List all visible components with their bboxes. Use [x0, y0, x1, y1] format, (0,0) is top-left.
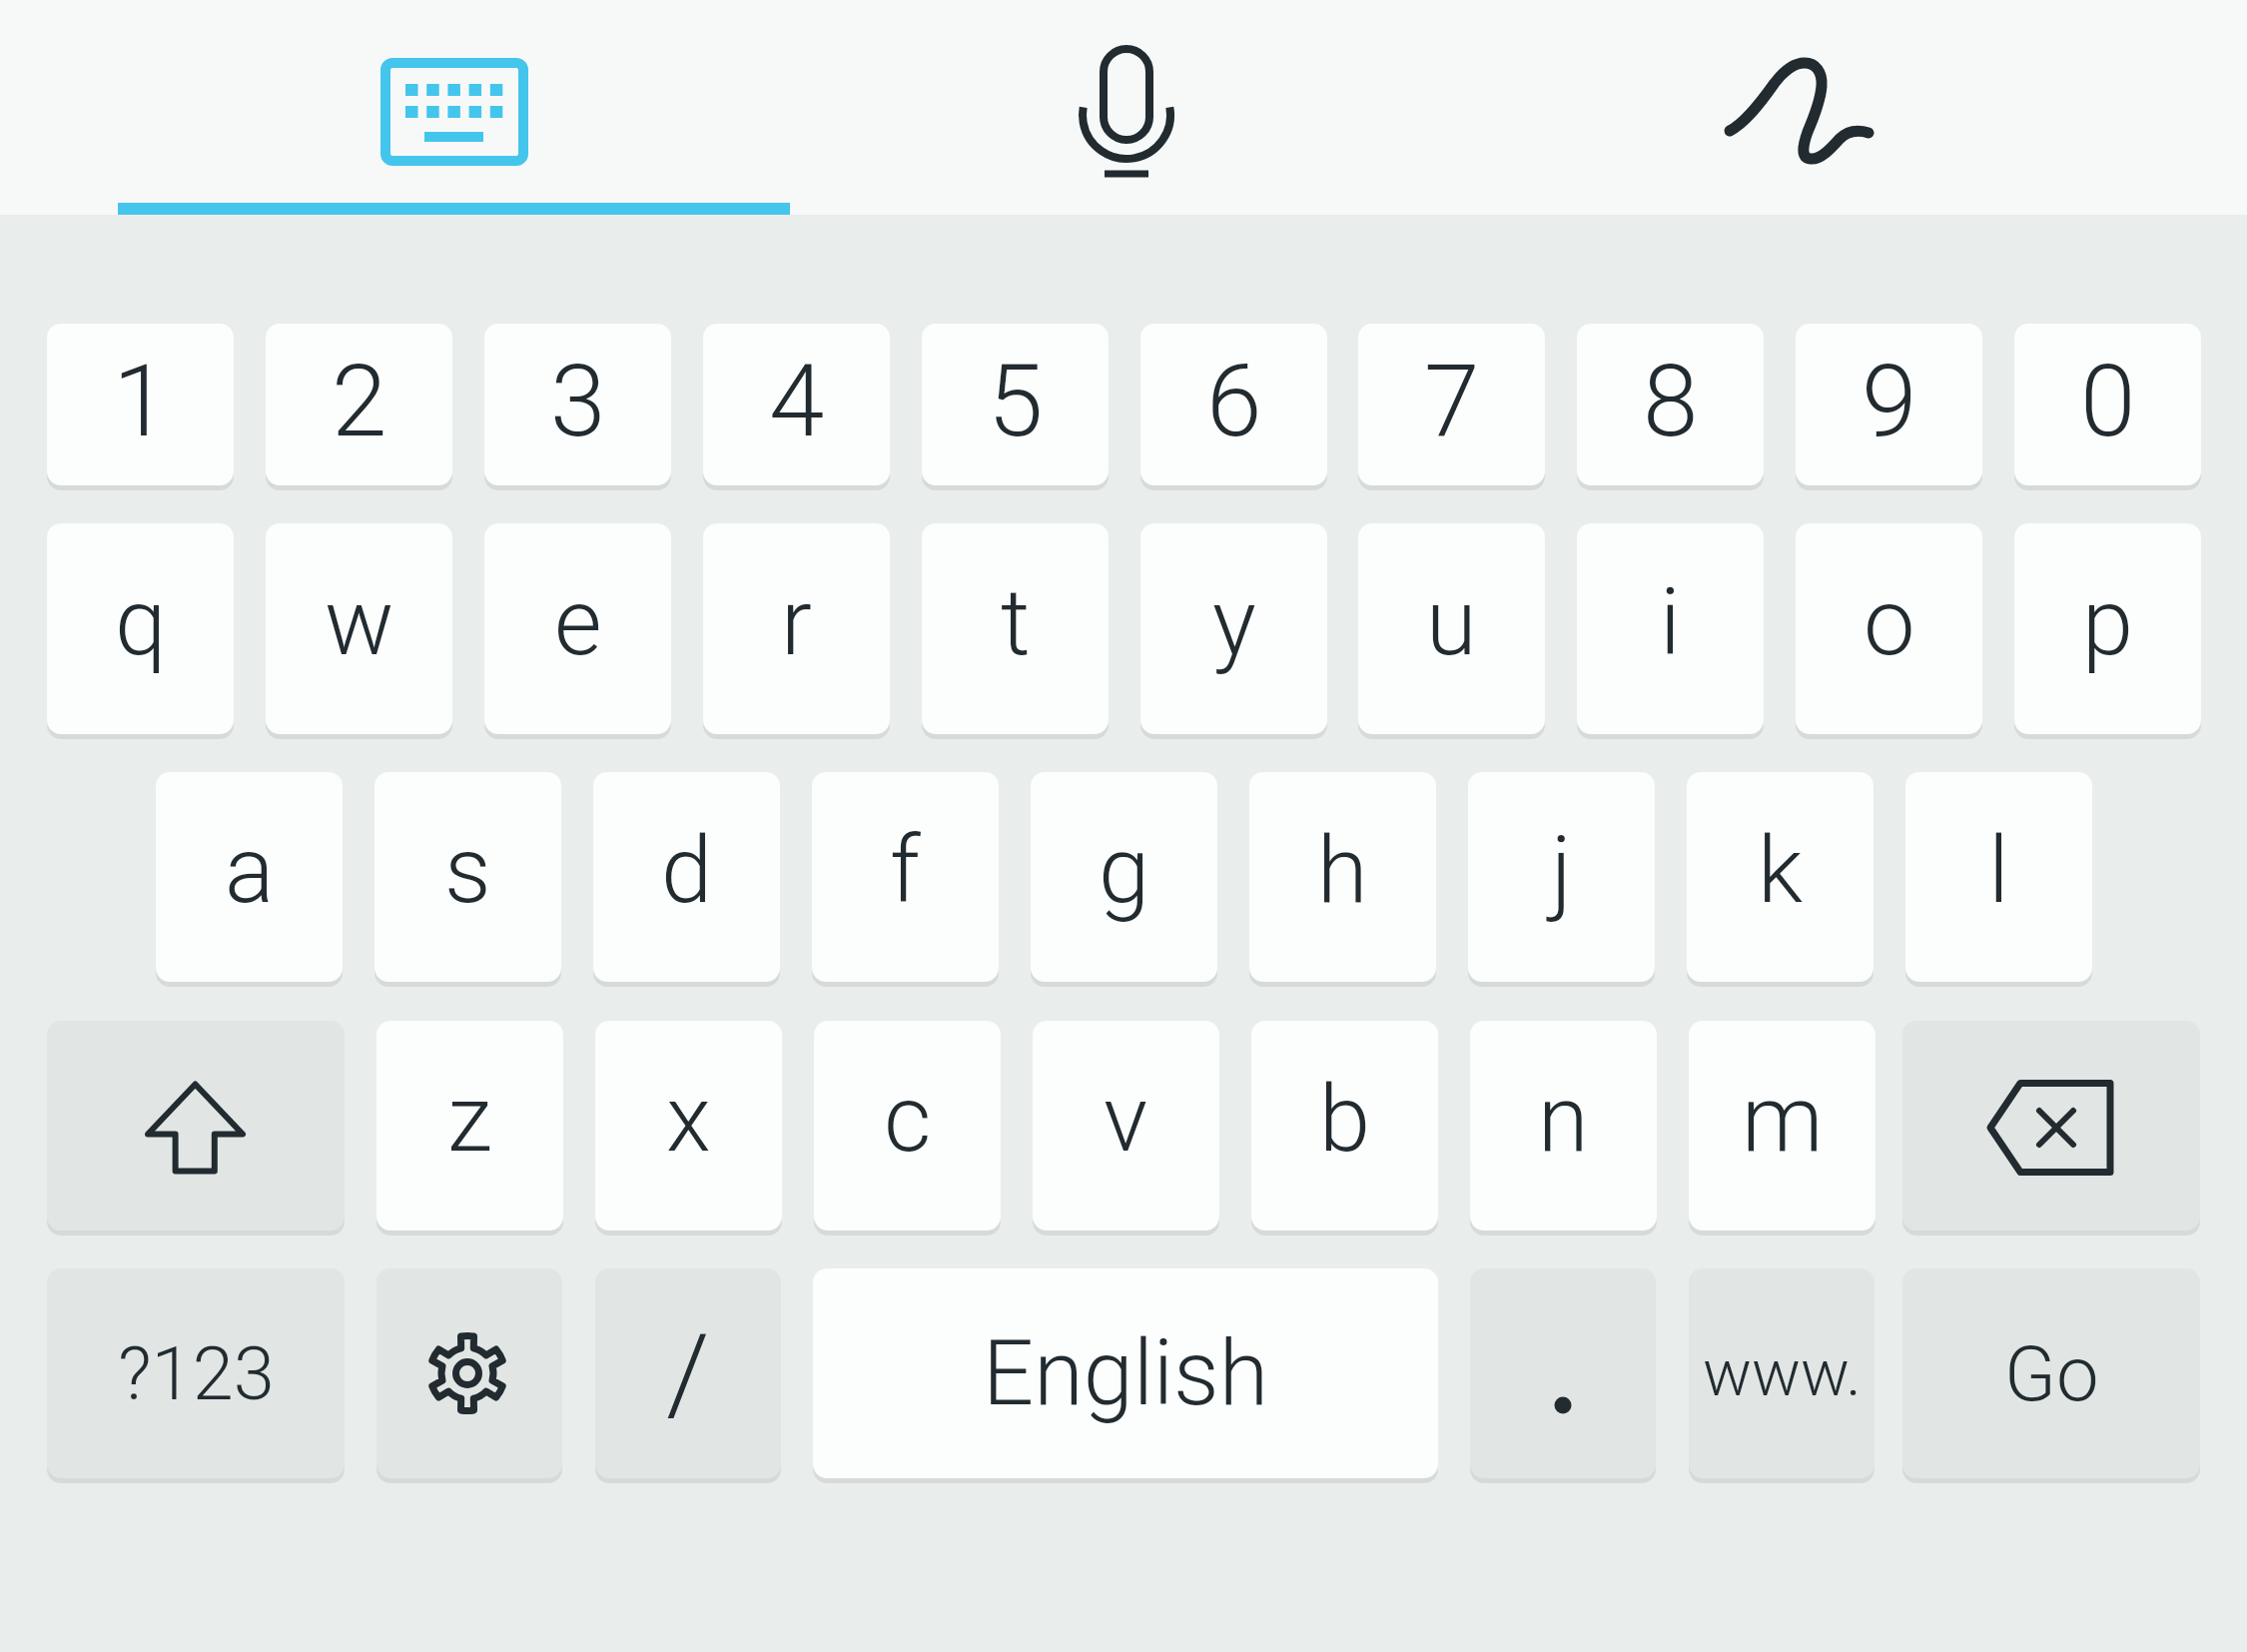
staticText: 2	[332, 343, 387, 459]
button[interactable]: e	[484, 523, 671, 734]
button[interactable]	[0, 0, 749, 215]
button[interactable]: 6	[1140, 324, 1327, 485]
staticText: o	[1864, 569, 1915, 677]
staticText: m	[1742, 1066, 1824, 1174]
staticText: l	[1988, 817, 2009, 925]
button[interactable]	[1470, 1268, 1656, 1478]
staticText: Go	[2004, 1329, 2099, 1418]
staticText: 5	[988, 343, 1044, 459]
button[interactable]: English	[813, 1268, 1438, 1478]
staticText: r	[781, 569, 812, 677]
button[interactable]: m	[1689, 1021, 1875, 1231]
staticText: /	[666, 1309, 710, 1438]
staticText: w	[325, 569, 394, 677]
staticText: b	[1319, 1066, 1370, 1174]
button[interactable]: g	[1031, 772, 1217, 982]
button[interactable]: k	[1687, 772, 1873, 982]
staticText: u	[1426, 569, 1477, 677]
staticText: d	[661, 817, 713, 925]
staticText: i	[1660, 569, 1681, 677]
staticText: x	[666, 1066, 711, 1174]
staticText: g	[1099, 817, 1150, 925]
button[interactable]: 8	[1577, 324, 1764, 485]
button[interactable]	[1498, 0, 2247, 215]
staticText: 9	[1862, 343, 1917, 459]
button[interactable]	[1902, 1021, 2200, 1231]
button[interactable]: r	[703, 523, 890, 734]
staticText: n	[1538, 1066, 1589, 1174]
button[interactable]: o	[1796, 523, 1982, 734]
button[interactable]: y	[1140, 523, 1327, 734]
staticText: 7	[1424, 343, 1480, 459]
staticText: h	[1317, 817, 1368, 925]
button[interactable]: a	[156, 772, 343, 982]
button[interactable]: j	[1468, 772, 1655, 982]
staticText: k	[1758, 817, 1804, 925]
button[interactable]: h	[1249, 772, 1436, 982]
staticText: t	[1001, 569, 1031, 677]
staticText: www.	[1703, 1335, 1862, 1411]
button[interactable]: t	[922, 523, 1109, 734]
staticText: y	[1212, 569, 1256, 677]
button[interactable]: l	[1905, 772, 2092, 982]
button[interactable]: c	[814, 1021, 1001, 1231]
staticText: e	[554, 569, 602, 677]
button[interactable]: b	[1251, 1021, 1438, 1231]
button[interactable]: ?123	[47, 1268, 345, 1478]
staticText: 0	[2080, 343, 2136, 459]
staticText: 4	[769, 343, 825, 459]
button[interactable]: 2	[266, 324, 452, 485]
button[interactable]: x	[595, 1021, 782, 1231]
button[interactable]: Go	[1902, 1268, 2200, 1478]
staticText: j	[1551, 817, 1573, 925]
button[interactable]: q	[47, 523, 234, 734]
button[interactable]	[749, 0, 1498, 215]
button[interactable]: v	[1033, 1021, 1219, 1231]
staticText: 3	[550, 343, 606, 459]
staticText: 6	[1206, 343, 1262, 459]
staticText: 1	[113, 343, 169, 459]
staticText: f	[890, 817, 921, 925]
staticText: q	[115, 569, 167, 677]
button[interactable]: z	[376, 1021, 563, 1231]
staticText: p	[2082, 569, 2133, 677]
staticText: v	[1104, 1066, 1148, 1174]
staticText: 8	[1643, 343, 1699, 459]
button[interactable]: /	[595, 1268, 781, 1478]
staticText: c	[884, 1066, 932, 1174]
staticText: English	[983, 1321, 1269, 1426]
button[interactable]: 9	[1796, 324, 1982, 485]
button[interactable]	[47, 1021, 345, 1231]
button[interactable]: 7	[1358, 324, 1545, 485]
staticText: z	[447, 1066, 492, 1174]
button[interactable]: 3	[484, 324, 671, 485]
button[interactable]: www.	[1689, 1268, 1874, 1478]
button[interactable]: s	[374, 772, 561, 982]
staticText: ?123	[118, 1330, 275, 1417]
button[interactable]: p	[2014, 523, 2201, 734]
button[interactable]: 5	[922, 324, 1109, 485]
button[interactable]	[376, 1268, 562, 1478]
button[interactable]: u	[1358, 523, 1545, 734]
button[interactable]: 0	[2014, 324, 2201, 485]
button[interactable]: w	[266, 523, 452, 734]
staticText: a	[225, 817, 275, 925]
button[interactable]: i	[1577, 523, 1764, 734]
button[interactable]: 1	[47, 324, 234, 485]
button[interactable]: d	[593, 772, 780, 982]
button[interactable]: n	[1470, 1021, 1657, 1231]
staticText: s	[444, 817, 491, 925]
button[interactable]: 4	[703, 324, 890, 485]
button[interactable]: f	[812, 772, 999, 982]
